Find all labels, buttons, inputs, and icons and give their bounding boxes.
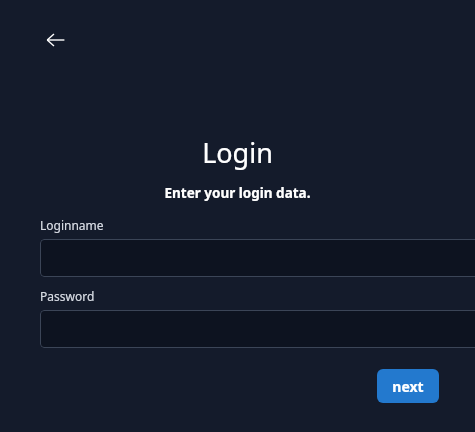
button[interactable]: next (377, 369, 439, 403)
staticText: Enter your login data. (0, 184, 475, 202)
staticText: Loginname (40, 217, 104, 233)
staticText: next (392, 377, 424, 396)
staticText: Login (0, 134, 475, 171)
button[interactable]: Loginname input field (40, 239, 475, 277)
staticText: Password (40, 288, 95, 304)
button[interactable]: Password input field (40, 310, 475, 348)
button[interactable]: Back (38, 22, 74, 58)
